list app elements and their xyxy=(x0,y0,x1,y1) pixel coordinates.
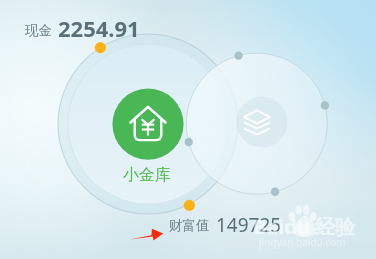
staticText: 财富值 xyxy=(169,217,210,234)
staticText: jingyan.baidu.com xyxy=(259,235,346,249)
staticText: 2254.91 xyxy=(58,13,140,43)
staticText: 现金 xyxy=(25,22,52,39)
staticText: 小金库 xyxy=(123,165,171,185)
staticText: 149725 xyxy=(216,212,282,238)
staticText: Baidu 经验 xyxy=(253,213,356,240)
